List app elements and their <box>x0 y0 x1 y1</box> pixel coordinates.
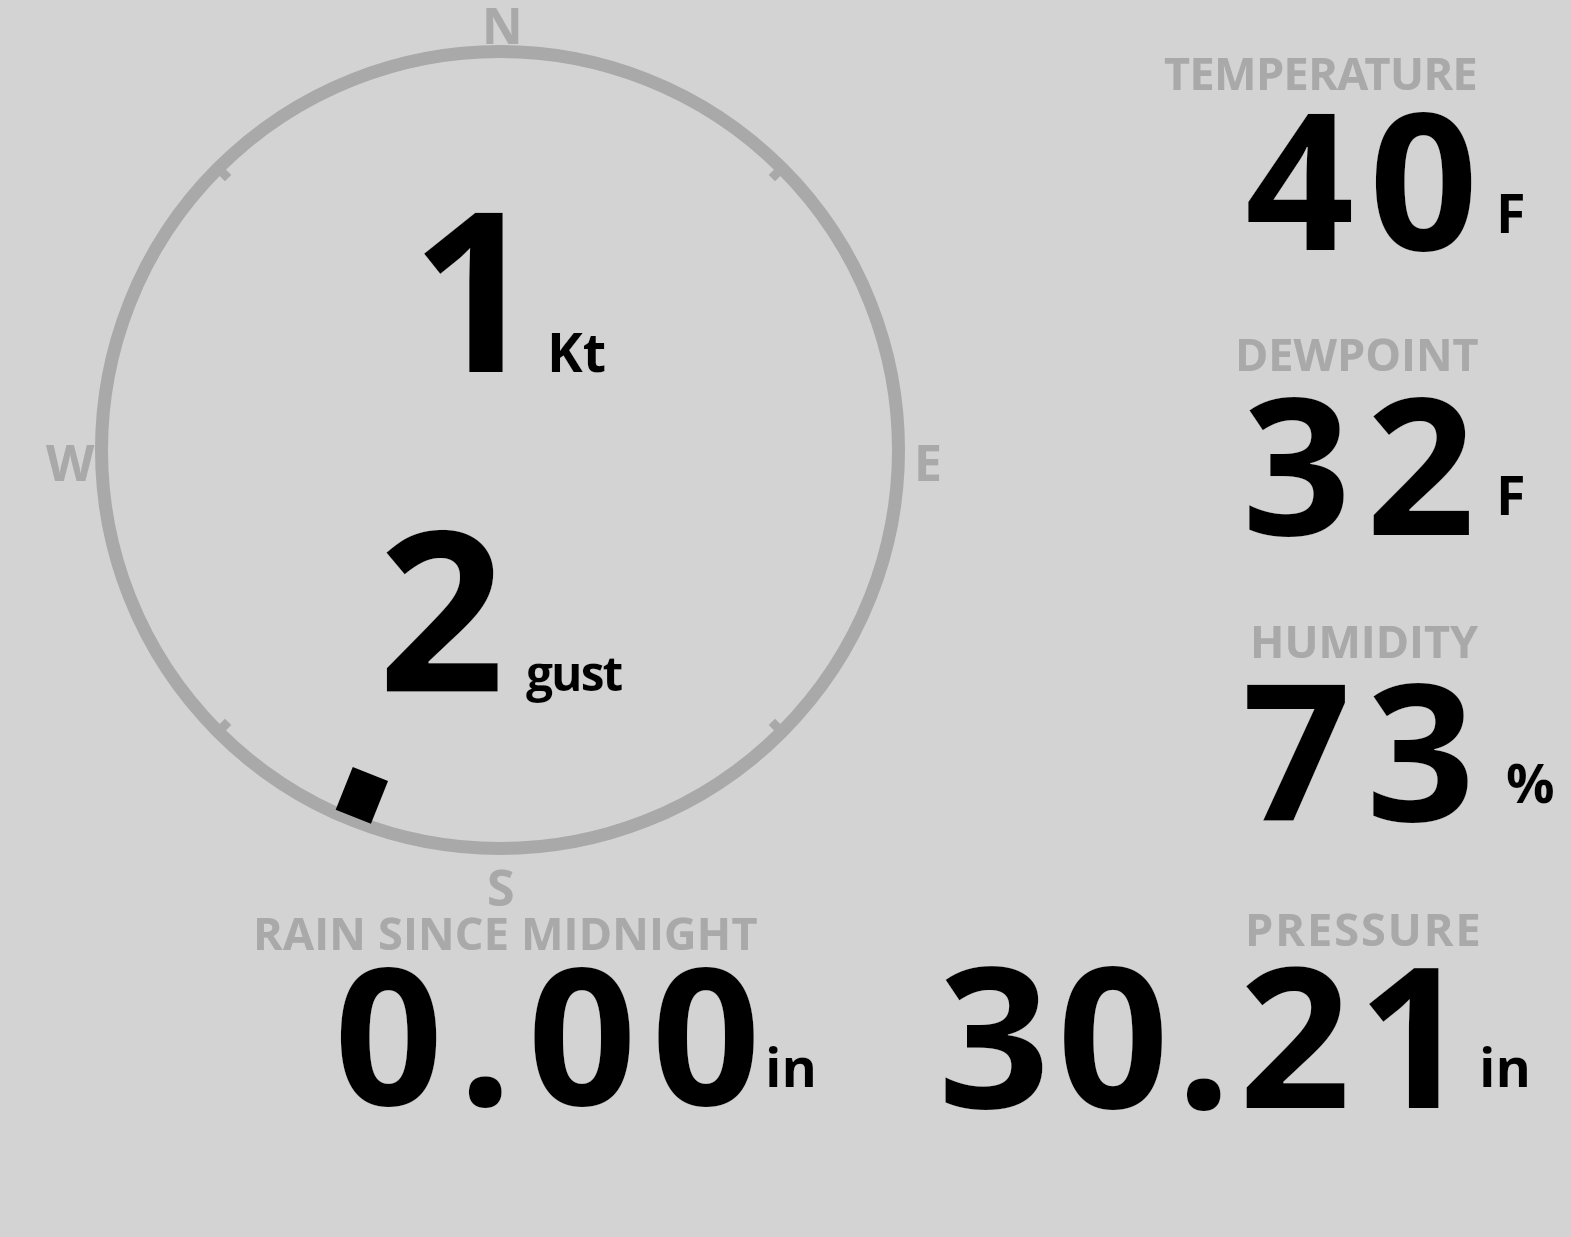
staticText: S <box>487 853 515 921</box>
staticText: RAIN SINCE MIDNIGHT <box>253 902 758 963</box>
staticText: 73 <box>1242 617 1491 877</box>
button[interactable] <box>1130 300 1571 560</box>
staticText: 32 <box>1242 331 1491 591</box>
staticText: W <box>46 428 95 496</box>
staticText: HUMIDITY <box>1250 610 1479 671</box>
staticText: Kt <box>547 314 607 388</box>
staticText: F <box>1496 457 1526 531</box>
staticText: TEMPERATURE <box>1164 42 1478 103</box>
button[interactable] <box>1130 20 1571 280</box>
staticText: 40 <box>1245 46 1494 306</box>
button[interactable]: Wind direction dial, south-south-west <box>95 45 905 855</box>
staticText: DEWPOINT <box>1235 323 1479 384</box>
staticText: gust <box>526 640 622 705</box>
button[interactable] <box>1130 588 1571 848</box>
button[interactable] <box>860 880 1571 1130</box>
staticText: N <box>482 0 523 59</box>
staticText: in <box>765 1029 817 1103</box>
staticText: 0.00 <box>334 901 776 1161</box>
staticText: PRESSURE <box>1245 898 1483 959</box>
staticText: 1 <box>411 135 538 437</box>
staticText: % <box>1506 745 1555 819</box>
staticText: E <box>914 428 943 496</box>
staticText: 2 <box>378 454 505 756</box>
button[interactable] <box>250 880 830 1130</box>
staticText: 30.21 <box>938 899 1477 1166</box>
staticText: F <box>1496 175 1526 249</box>
staticText: in <box>1479 1029 1531 1103</box>
